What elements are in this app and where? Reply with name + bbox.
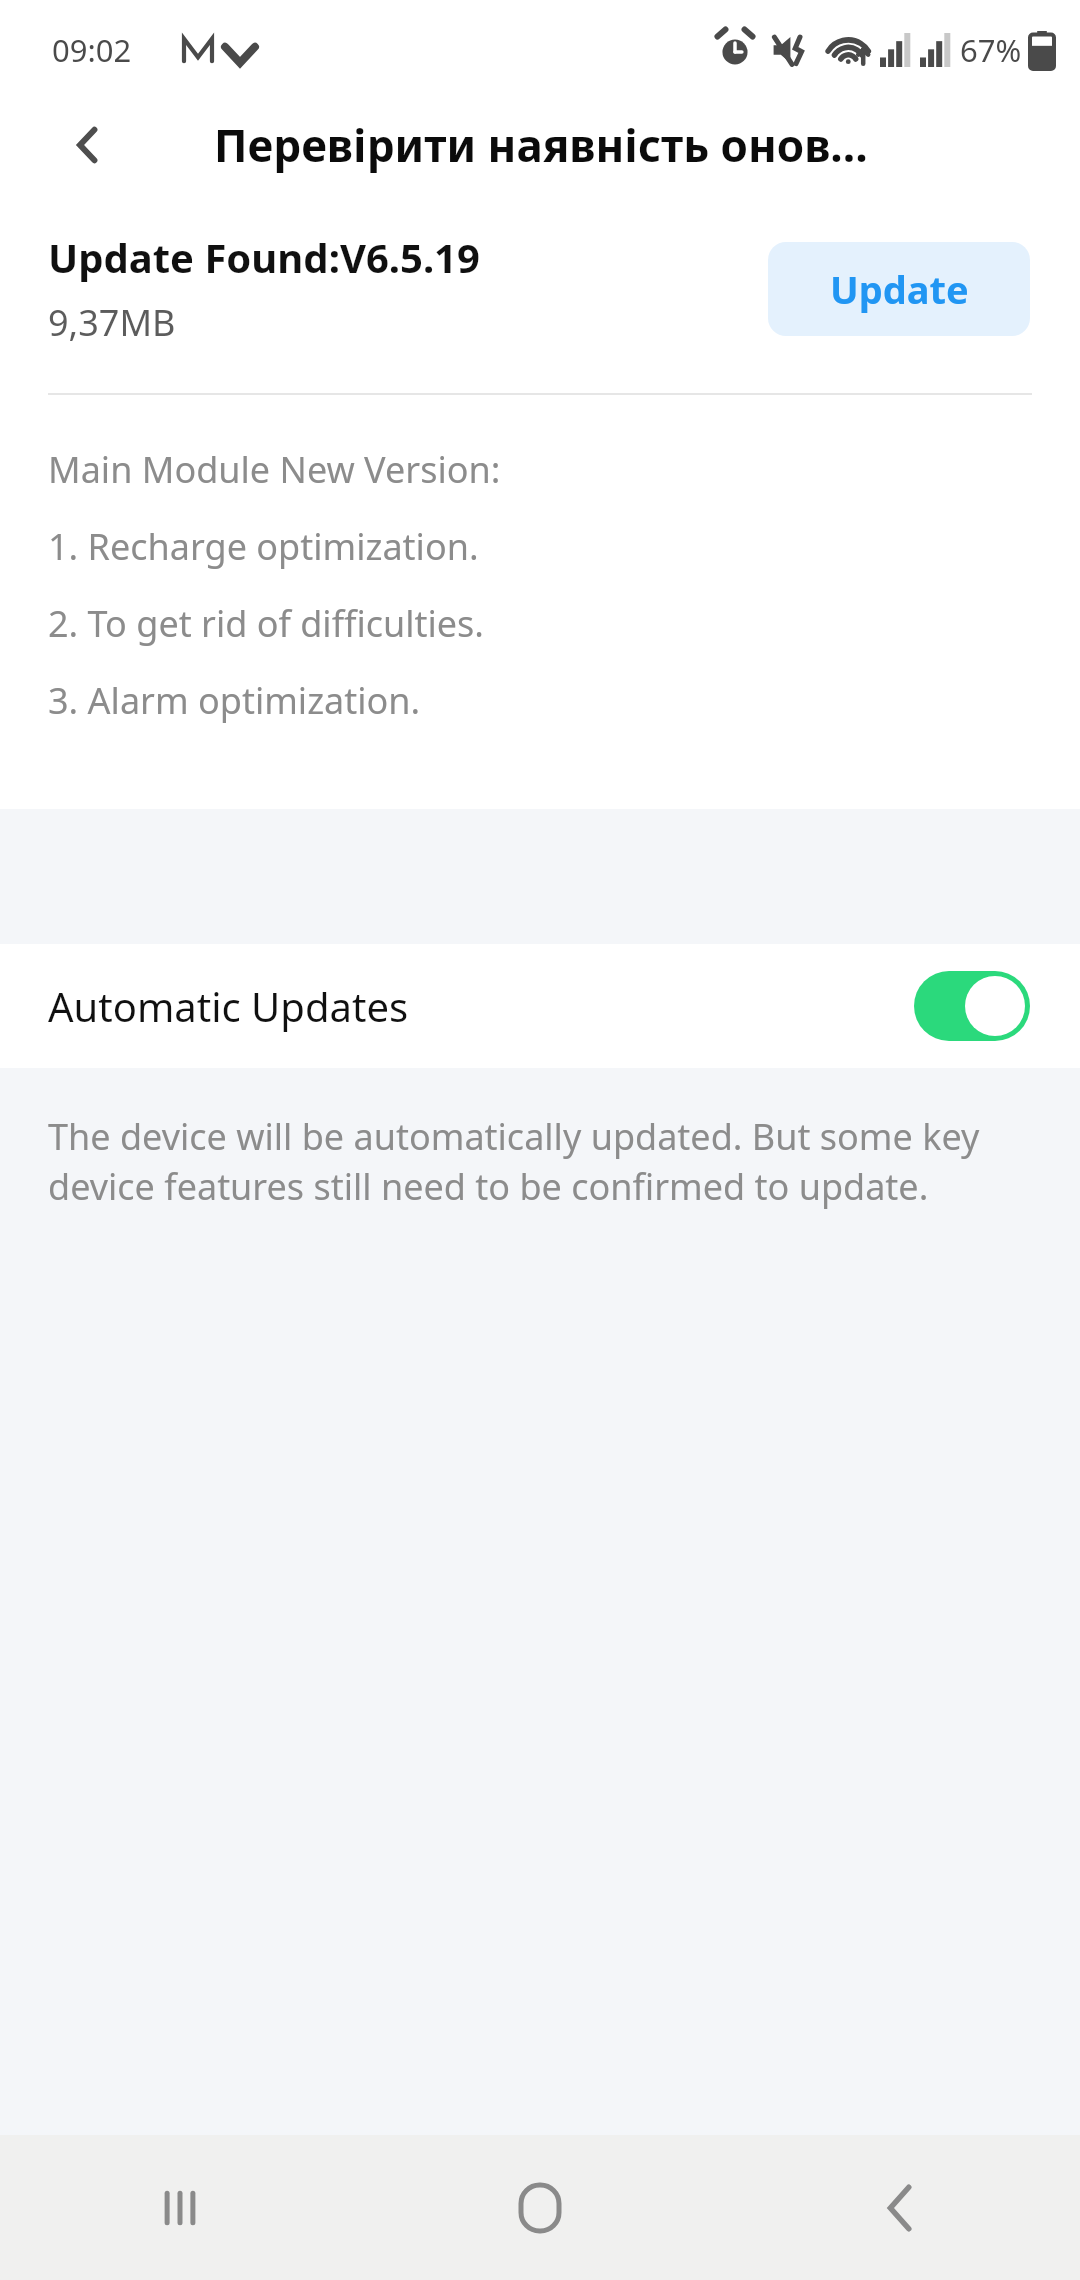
staticText: Update Found:V6.5.19	[48, 230, 480, 284]
staticText: Update	[830, 263, 969, 315]
button[interactable]: Recent apps	[120, 2148, 240, 2268]
other: Automatic Updates toggle, on	[914, 971, 1030, 1041]
staticText: 09:02	[52, 29, 132, 71]
staticText: 2. To get rid of difficulties.	[48, 599, 484, 648]
staticText: Main Module New Version:	[48, 445, 501, 494]
button[interactable]: Home	[480, 2148, 600, 2268]
staticText: Automatic Updates	[48, 979, 914, 1033]
staticText: 67%	[960, 29, 1022, 71]
button[interactable]: Update	[768, 242, 1030, 336]
staticText: 1. Recharge optimization.	[48, 522, 479, 571]
button[interactable]: Back	[46, 103, 130, 187]
staticText: Перевірити наявність онов…	[214, 115, 868, 175]
button[interactable]: Automatic Updates	[0, 944, 1080, 1068]
staticText: The device will be automatically updated…	[48, 1112, 1028, 1211]
button[interactable]: Back	[840, 2148, 960, 2268]
staticText: 3. Alarm optimization.	[48, 676, 421, 725]
staticText: 9,37MB	[48, 298, 176, 347]
